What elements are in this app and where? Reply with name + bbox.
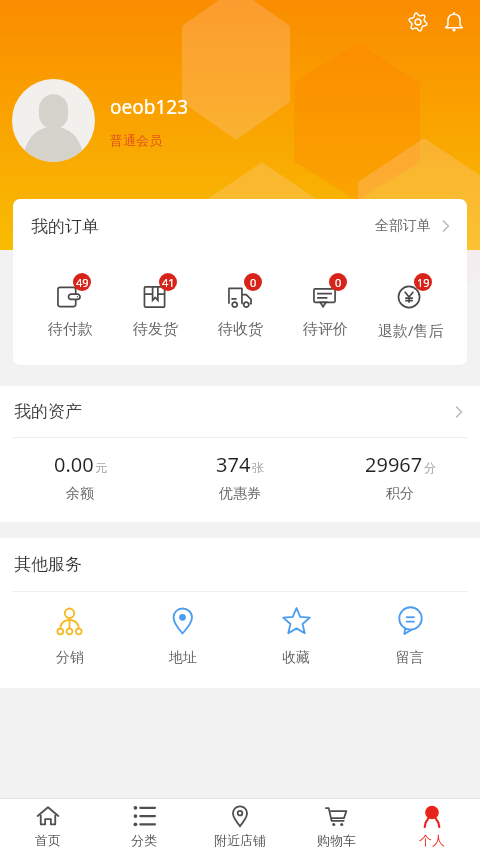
button[interactable]: 收藏 [239,608,353,667]
staticText: 其他服务 [14,554,82,575]
staticText: 全部订单 [375,217,431,235]
button[interactable]: 购物车 [288,805,384,848]
staticText: 29967 [365,451,423,478]
staticText: 元 [95,460,107,475]
staticText: 0.00 [54,451,94,478]
staticText: 收藏 [282,649,310,667]
button[interactable]: 我的资产 [0,386,480,437]
staticText: 待评价 [303,320,348,339]
button[interactable]: 我的订单 [13,199,467,253]
button[interactable]: 41 [113,273,198,339]
staticText: 首页 [35,832,61,848]
staticText: 个人 [419,832,445,848]
staticText: 待付款 [48,320,93,339]
button[interactable]: Notifications [438,6,470,38]
staticText: 0 [250,275,257,290]
button[interactable]: 0.00 [0,451,160,503]
staticText: oeob123 [110,94,188,120]
staticText: 分销 [56,649,84,667]
button[interactable]: 个人 [384,805,480,848]
staticText: 留言 [396,649,424,667]
staticText: 积分 [386,485,414,503]
staticText: 分 [424,460,436,475]
staticText: 待收货 [218,320,263,339]
staticText: 41 [162,275,175,290]
staticText: 退款/售后 [378,320,444,340]
staticText: 张 [252,460,264,475]
button[interactable]: 分类 [96,805,192,848]
button[interactable]: 0 [283,273,368,339]
staticText: 余额 [66,485,94,503]
staticText: 地址 [169,649,197,667]
staticText: 附近店铺 [214,832,266,848]
staticText: 普通会员 [110,132,162,148]
staticText: 分类 [131,832,157,848]
button[interactable]: 首页 [0,805,96,848]
staticText: 我的订单 [31,216,99,237]
staticText: 0 [335,275,342,290]
button[interactable]: 19 [368,273,453,340]
staticText: 19 [417,275,430,290]
staticText: 374 [216,451,251,478]
staticText: 购物车 [317,832,356,848]
button[interactable]: 0 [198,273,283,339]
button[interactable]: 地址 [126,608,239,667]
button[interactable]: 374 [160,451,320,503]
staticText: 我的资产 [14,401,82,422]
button[interactable]: 29967 [320,451,480,503]
staticText: 49 [76,275,89,290]
button[interactable]: 附近店铺 [192,805,288,848]
staticText: 优惠券 [219,485,261,503]
button[interactable]: Avatar [12,79,95,162]
button[interactable]: 49 [27,273,113,339]
button[interactable]: Settings [402,6,434,38]
button[interactable]: 留言 [353,608,467,667]
button[interactable]: 分销 [13,608,126,667]
staticText: 待发货 [133,320,178,339]
